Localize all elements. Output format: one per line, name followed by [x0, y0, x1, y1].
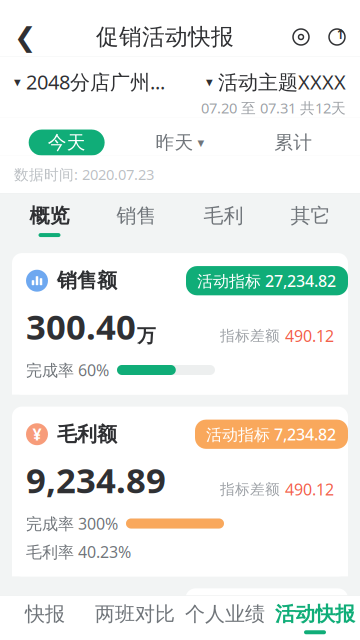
- button[interactable]: 快报: [0, 598, 90, 638]
- staticText: 完成率 60%: [26, 359, 109, 381]
- staticText: ↑: [335, 27, 346, 42]
- staticText: 累计: [274, 131, 312, 154]
- button[interactable]: 活动快报: [270, 598, 360, 638]
- staticText: 毛利: [203, 203, 243, 228]
- button[interactable]: 昨天: [155, 129, 204, 155]
- staticText: 07.20 至 07.31 共12天: [201, 98, 346, 118]
- button[interactable]: Settings: [284, 18, 318, 56]
- staticText: 今天: [48, 131, 86, 154]
- staticText: ▾: [197, 135, 204, 150]
- staticText: 销售额: [57, 268, 117, 293]
- staticText: 昨天: [155, 131, 193, 154]
- button[interactable]: ▾: [14, 68, 165, 95]
- staticText: 两班对比: [95, 602, 175, 626]
- button[interactable]: 销售额: [0, 253, 360, 395]
- button[interactable]: ▾: [206, 68, 346, 95]
- staticText: 活动主题XXXX: [218, 68, 346, 95]
- staticText: 促销活动快报: [96, 23, 234, 51]
- staticText: 活动指标 27,234.82: [197, 270, 336, 291]
- button[interactable]: 概览: [6, 201, 93, 239]
- staticText: ❯: [147, 622, 162, 640]
- staticText: ❮: [14, 22, 36, 52]
- staticText: ▾: [14, 74, 21, 89]
- staticText: 300.40: [26, 303, 136, 349]
- staticText: 完成率 300%: [26, 513, 118, 534]
- staticText: 2048分店广州...: [26, 68, 165, 95]
- button[interactable]: ¥: [0, 407, 360, 576]
- button[interactable]: 客流: [12, 610, 174, 640]
- button[interactable]: Back: [4, 18, 46, 56]
- staticText: ▾: [206, 74, 213, 89]
- button[interactable]: 两班对比: [90, 598, 180, 638]
- staticText: 指标差额: [220, 327, 280, 345]
- staticText: 销售: [116, 203, 156, 228]
- staticText: 数据时间: 2020.07.23: [14, 164, 154, 184]
- staticText: 毛利率 40.23%: [26, 541, 131, 562]
- staticText: 毛利额: [57, 422, 117, 447]
- staticText: 客流: [24, 621, 62, 640]
- staticText: ¥: [32, 424, 41, 445]
- staticText: 概览: [29, 203, 69, 228]
- staticText: 492,332.54: [197, 626, 323, 640]
- button[interactable]: 客单: [185, 588, 348, 640]
- staticText: 9,234.89: [26, 457, 166, 503]
- button[interactable]: 其它: [267, 201, 354, 239]
- staticText: 快报: [25, 602, 65, 626]
- button[interactable]: 毛利: [180, 201, 267, 239]
- staticText: 万: [137, 324, 156, 347]
- staticText: 其它: [290, 203, 330, 228]
- button[interactable]: 销售: [93, 201, 180, 239]
- staticText: 客单: [197, 599, 235, 622]
- button[interactable]: 累计: [274, 129, 312, 155]
- staticText: 个人业绩: [185, 602, 265, 626]
- button[interactable]: Refresh: [318, 18, 356, 56]
- staticText: 活动快报: [275, 602, 355, 626]
- staticText: 活动指标 7,234.82: [206, 424, 336, 445]
- button[interactable]: 今天: [29, 129, 105, 155]
- staticText: 490.12: [285, 325, 334, 346]
- staticText: 指标差额: [220, 480, 280, 498]
- button[interactable]: 个人业绩: [180, 598, 270, 638]
- staticText: 490.12: [285, 479, 334, 500]
